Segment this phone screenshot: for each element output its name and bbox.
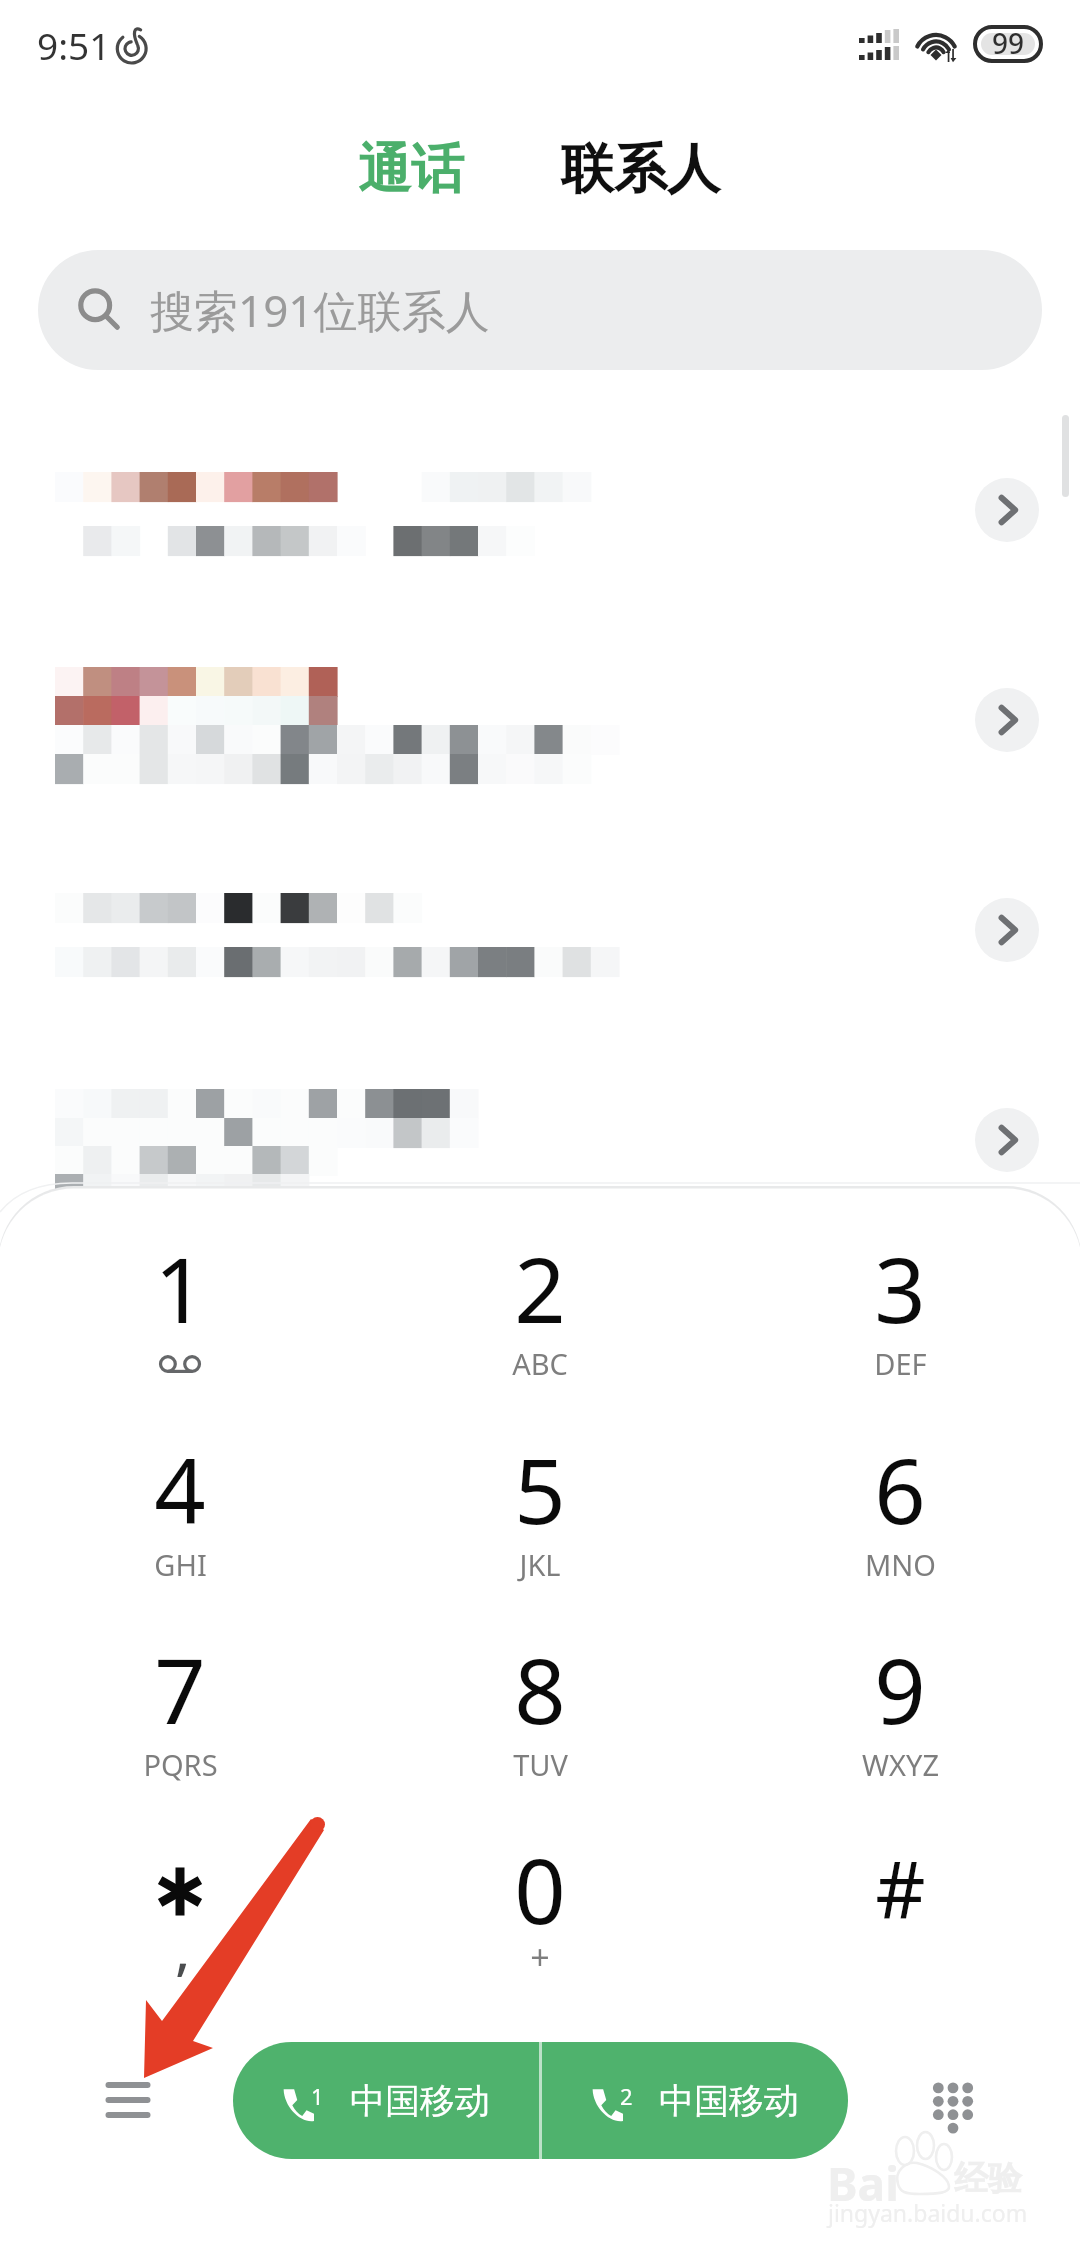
- staticText: WXYZ: [862, 1745, 939, 1784]
- staticText: 2: [514, 1227, 566, 1350]
- button[interactable]: 2: [542, 2042, 848, 2159]
- button[interactable]: 6: [720, 1391, 1080, 1591]
- staticText: 8: [514, 1628, 566, 1751]
- staticText: 0: [514, 1828, 566, 1951]
- button[interactable]: 2: [360, 1190, 720, 1390]
- staticText: 6: [874, 1428, 926, 1551]
- button[interactable]: 3: [720, 1190, 1080, 1390]
- staticText: ABC: [512, 1344, 568, 1383]
- button[interactable]: 联系人: [544, 124, 736, 214]
- staticText: Bai: [827, 2152, 899, 2215]
- button[interactable]: Call log entry: [0, 420, 1080, 630]
- button[interactable]: Call details: [975, 898, 1039, 962]
- button[interactable]: Call details: [975, 688, 1039, 752]
- staticText: DEF: [874, 1344, 927, 1383]
- staticText: 搜索191位联系人: [150, 280, 490, 340]
- button[interactable]: ,: [0, 1791, 360, 1991]
- button[interactable]: 8: [360, 1591, 720, 1791]
- staticText: 9:51: [37, 20, 111, 70]
- button[interactable]: Call log entry: [0, 840, 1080, 1050]
- staticText: jingyan.baidu.com: [828, 2197, 1028, 2228]
- button[interactable]: 7: [0, 1591, 360, 1791]
- button[interactable]: #: [720, 1791, 1080, 1991]
- button[interactable]: 1: [0, 1190, 360, 1390]
- staticText: PQRS: [143, 1745, 218, 1784]
- staticText: 经验: [954, 2157, 1022, 2200]
- button[interactable]: Call log entry: [0, 630, 1080, 840]
- staticText: 3: [874, 1227, 926, 1350]
- button[interactable]: Dialpad: [911, 2060, 995, 2144]
- staticText: #: [875, 1835, 926, 1941]
- staticText: 中国移动: [350, 2079, 490, 2123]
- staticText: ,: [175, 1912, 190, 1986]
- button[interactable]: Call details: [975, 1108, 1039, 1172]
- button[interactable]: 通话: [339, 124, 483, 214]
- staticText: 通话: [358, 136, 464, 203]
- staticText: 2: [620, 2081, 633, 2111]
- staticText: 9: [874, 1628, 926, 1751]
- staticText: 4: [154, 1428, 206, 1551]
- staticText: 联系人: [561, 136, 720, 203]
- button[interactable]: 1: [233, 2042, 539, 2159]
- staticText: 5: [514, 1428, 566, 1551]
- button[interactable]: Menu: [86, 2058, 170, 2142]
- button[interactable]: Call details: [975, 478, 1039, 542]
- staticText: JKL: [519, 1545, 561, 1584]
- button[interactable]: 0: [360, 1791, 720, 1991]
- button[interactable]: 4: [0, 1391, 360, 1591]
- staticText: MNO: [865, 1545, 936, 1584]
- button[interactable]: 5: [360, 1391, 720, 1591]
- staticText: +: [530, 1934, 550, 1980]
- button[interactable]: Call log entry: [0, 1050, 1080, 1186]
- staticText: GHI: [154, 1545, 207, 1584]
- staticText: 中国移动: [659, 2079, 799, 2123]
- staticText: 7: [154, 1628, 206, 1751]
- staticText: 1: [154, 1227, 206, 1350]
- button[interactable]: 9: [720, 1591, 1080, 1791]
- staticText: 99: [992, 24, 1025, 62]
- staticText: TUV: [513, 1745, 568, 1784]
- button[interactable]: 搜索191位联系人: [38, 250, 1042, 370]
- staticText: 1: [311, 2081, 324, 2111]
